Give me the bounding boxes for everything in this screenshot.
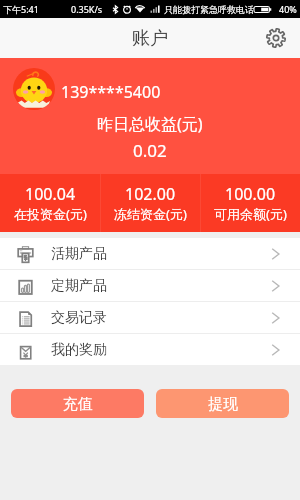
staticText: 交易记录	[51, 309, 107, 327]
button[interactable]: 活期产品	[0, 238, 300, 269]
staticText: 充值	[63, 395, 93, 414]
staticText: 102.00	[125, 183, 176, 205]
button[interactable]: Settings	[262, 24, 290, 52]
staticText: 昨日总收益(元)	[97, 113, 203, 135]
button[interactable]: 充值	[11, 389, 144, 418]
button[interactable]: 100.00	[201, 174, 300, 223]
staticText: 账户	[132, 27, 168, 50]
staticText: 我的奖励	[51, 341, 107, 359]
staticText: 冻结资金(元)	[114, 205, 187, 223]
staticText: 活期产品	[51, 245, 107, 263]
staticText: 下午5:41	[3, 3, 39, 15]
staticText: 提现	[208, 395, 238, 414]
button[interactable]: 100.04	[0, 174, 100, 223]
staticText: 0.35K/s	[71, 3, 103, 15]
staticText: 在投资金(元)	[14, 205, 87, 223]
button[interactable]: 交易记录	[0, 302, 300, 333]
button[interactable]: 102.00	[101, 174, 200, 223]
staticText: 40%	[279, 3, 297, 15]
button[interactable]: 我的奖励	[0, 334, 300, 365]
button[interactable]: 定期产品	[0, 270, 300, 301]
staticText: 可用余额(元)	[214, 205, 287, 223]
staticText: 139****5400	[61, 81, 161, 103]
button[interactable]: 提现	[156, 389, 289, 418]
staticText: 100.00	[225, 183, 276, 205]
staticText: 0.02	[133, 139, 167, 162]
staticText: 只能拨打紧急呼救电话	[164, 4, 254, 15]
staticText: 100.04	[25, 183, 76, 205]
staticText: 定期产品	[51, 277, 107, 295]
button[interactable]: Avatar	[13, 68, 55, 110]
